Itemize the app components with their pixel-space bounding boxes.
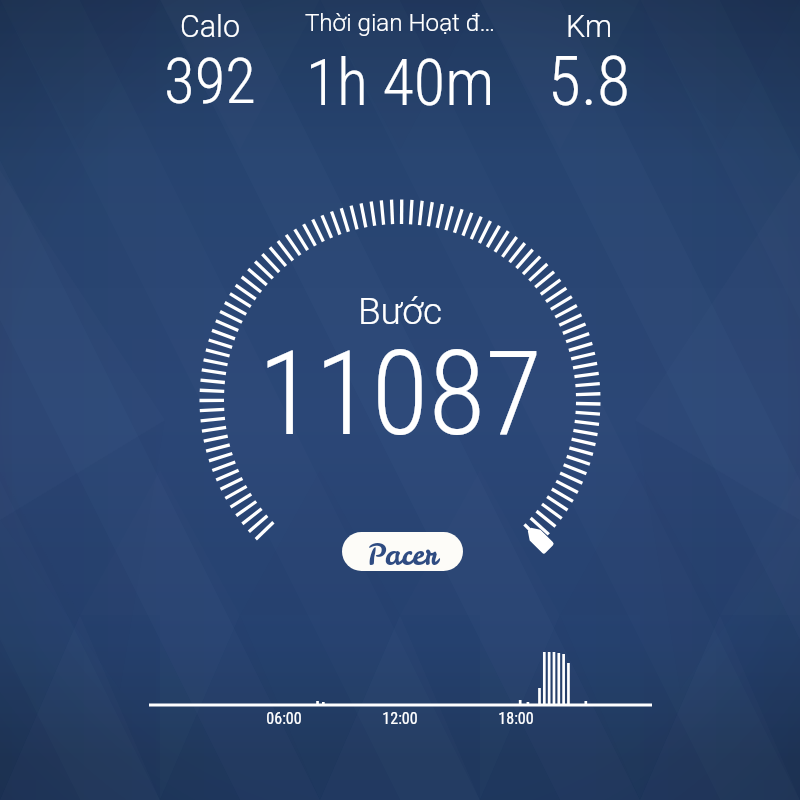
button[interactable]: Pacer logo xyxy=(342,532,463,571)
staticText: Km xyxy=(459,9,719,45)
staticText: 5.8 xyxy=(459,42,719,122)
button[interactable]: Bước 11087 xyxy=(200,200,600,600)
staticText: 11087 xyxy=(200,325,600,462)
button[interactable]: Biểu đồ hoạt động theo giờ xyxy=(140,640,660,730)
staticText: Pacer xyxy=(342,535,463,571)
staticText: Thời gian Hoạt đ… xyxy=(270,9,530,37)
staticText: 06:00 xyxy=(84,709,484,728)
staticText: 12:00 xyxy=(200,709,600,728)
staticText: 392 xyxy=(80,45,340,119)
staticText: Calo xyxy=(80,9,340,45)
button[interactable]: Thời gian Hoạt đ… xyxy=(270,3,530,115)
staticText: 18:00 xyxy=(316,709,716,728)
button[interactable]: Km xyxy=(459,3,719,115)
staticText: 1h 40m xyxy=(270,45,530,121)
button[interactable]: Calo xyxy=(80,3,340,115)
staticText: Bước xyxy=(200,290,600,333)
